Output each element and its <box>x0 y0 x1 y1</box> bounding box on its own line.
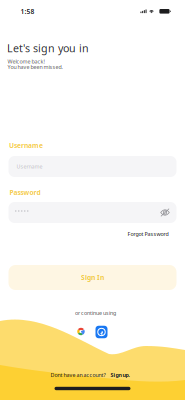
staticText: Username <box>9 141 43 150</box>
staticText: Welcome back! <box>7 58 44 65</box>
staticText: Password <box>9 188 40 197</box>
staticText: 1:58 <box>20 7 34 16</box>
button[interactable]: Sign In <box>8 265 176 290</box>
staticText: Username <box>16 163 42 170</box>
staticText: Sign up. <box>110 371 129 379</box>
staticText: Let's sign you in <box>7 41 89 55</box>
button[interactable]: Continue with Facebook <box>94 325 108 339</box>
staticText: Forgot Password <box>127 230 168 238</box>
button[interactable]: Forgot Password <box>124 228 171 240</box>
button[interactable]: Sign up. <box>108 369 131 381</box>
staticText: Sign In <box>81 273 104 282</box>
staticText: You have been missed. <box>7 63 62 71</box>
staticText: Dont have an account? <box>50 371 105 379</box>
button[interactable]: Show password <box>155 203 175 221</box>
staticText: or continue using <box>75 309 116 317</box>
button[interactable]: Continue with Google <box>75 325 87 337</box>
